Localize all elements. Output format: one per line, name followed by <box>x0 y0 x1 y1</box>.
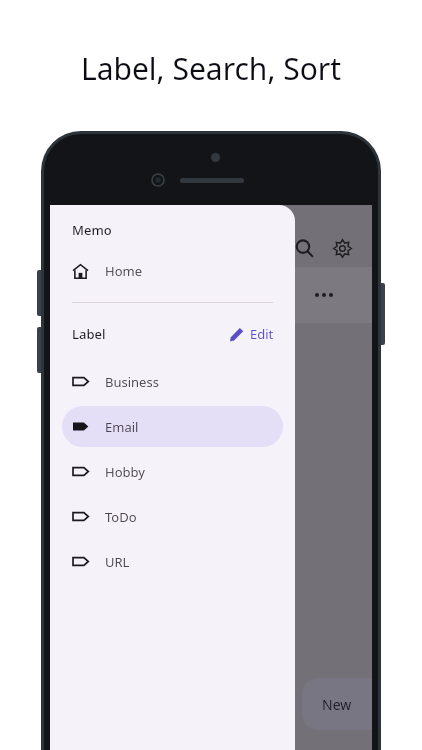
staticText: Label, Search, Sort <box>0 48 422 89</box>
button[interactable] <box>276 267 372 323</box>
staticText: Label <box>72 325 106 343</box>
button[interactable]: ToDo <box>62 496 283 537</box>
button[interactable]: Home <box>50 254 295 288</box>
button[interactable]: Edit <box>226 321 277 347</box>
button[interactable]: Search <box>287 231 321 265</box>
staticText: ToDo <box>105 508 137 526</box>
staticText: New <box>322 695 352 714</box>
button[interactable]: URL <box>62 541 283 582</box>
staticText: Edit <box>250 325 274 343</box>
staticText: Memo <box>72 221 112 239</box>
staticText: Hobby <box>105 463 145 481</box>
button[interactable]: New <box>302 678 372 730</box>
button[interactable]: Business <box>62 361 283 402</box>
staticText: Email <box>105 418 139 436</box>
button[interactable]: Email <box>62 406 283 447</box>
button[interactable]: Hobby <box>62 451 283 492</box>
staticText: Business <box>105 373 159 391</box>
staticText: Home <box>105 262 142 280</box>
staticText: URL <box>105 553 130 571</box>
button[interactable]: Settings <box>325 231 359 265</box>
